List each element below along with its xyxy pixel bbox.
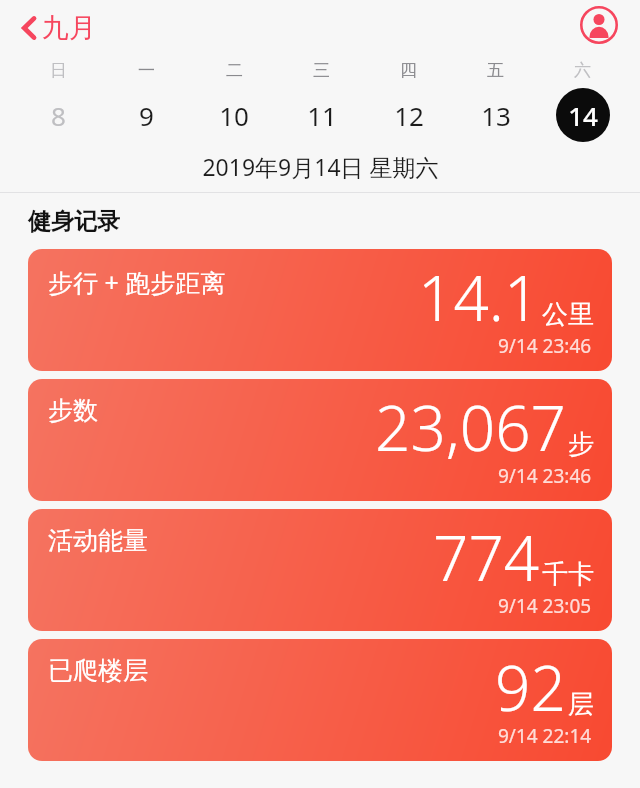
button[interactable]: 活动能量 <box>28 509 612 631</box>
staticText: 千卡 <box>542 558 594 591</box>
staticText: 活动能量 <box>48 525 148 556</box>
staticText: 九月 <box>42 11 96 45</box>
staticText: 9/14 23:46 <box>498 333 592 359</box>
staticText: 9/14 22:14 <box>498 723 592 749</box>
button[interactable]: 14 <box>539 84 626 146</box>
button[interactable]: 12 <box>365 84 452 146</box>
button[interactable]: 步数 <box>28 379 612 501</box>
staticText: 五 <box>487 60 504 81</box>
staticText: 9/14 23:05 <box>498 593 592 619</box>
staticText: 二 <box>226 60 243 81</box>
staticText: 23,067 <box>375 385 566 469</box>
button[interactable]: 8 <box>14 84 102 146</box>
staticText: 已爬楼层 <box>48 655 148 686</box>
staticText: 六 <box>574 60 591 81</box>
button[interactable]: Profile <box>576 2 622 48</box>
button[interactable]: 10 <box>190 84 278 146</box>
staticText: 三 <box>313 60 330 81</box>
staticText: 13 <box>481 98 511 133</box>
staticText: 层 <box>568 688 594 721</box>
button[interactable]: 九月 <box>14 7 104 49</box>
button[interactable]: 11 <box>278 84 365 146</box>
staticText: 步行 + 跑步距离 <box>48 265 226 299</box>
staticText: 日 <box>50 60 67 81</box>
staticText: 92 <box>495 645 566 729</box>
staticText: 11 <box>307 98 337 133</box>
staticText: 10 <box>219 98 249 133</box>
staticText: 四 <box>400 60 417 81</box>
staticText: 8 <box>51 98 66 133</box>
staticText: 14.1 <box>418 255 540 339</box>
staticText: 公里 <box>542 298 594 331</box>
button[interactable]: 已爬楼层 <box>28 639 612 761</box>
button[interactable]: 13 <box>452 84 539 146</box>
staticText: 2019年9月14日 星期六 <box>202 151 439 182</box>
button[interactable]: 步行 + 跑步距离 <box>28 249 612 371</box>
staticText: 步 <box>568 428 594 461</box>
staticText: 一 <box>138 60 155 81</box>
staticText: 9 <box>139 98 154 133</box>
button[interactable]: 9 <box>102 84 190 146</box>
staticText: 步数 <box>48 395 98 426</box>
staticText: 12 <box>394 98 424 133</box>
staticText: 774 <box>433 515 540 599</box>
staticText: 14 <box>568 98 598 133</box>
staticText: 健身记录 <box>28 207 120 236</box>
staticText: 9/14 23:46 <box>498 463 592 489</box>
